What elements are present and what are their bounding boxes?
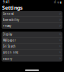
staticText: Wallpaper [3, 39, 16, 42]
staticText: > [59, 51, 61, 54]
staticText: > [59, 57, 61, 60]
button[interactable]: Wallpaper [2, 38, 62, 44]
button[interactable]: Screen Time [2, 50, 62, 56]
staticText: ıl ᯤ ▮ [54, 0, 61, 4]
staticText: > [59, 12, 61, 16]
staticText: > [59, 33, 61, 36]
staticText: Accessibility [3, 18, 19, 22]
staticText: > [59, 39, 61, 42]
button[interactable]: Accessibility [2, 17, 62, 23]
staticText: > [59, 45, 61, 48]
staticText: > [59, 18, 61, 22]
button[interactable]: General [2, 11, 62, 17]
staticText: 9:41 [3, 0, 10, 4]
staticText: Privacy [3, 24, 11, 28]
staticText: Screen Time [3, 51, 19, 54]
staticText: General [3, 12, 14, 16]
button[interactable]: Siri Search [2, 44, 62, 50]
button[interactable]: Display [2, 32, 62, 38]
staticText: Battery [3, 57, 12, 60]
staticText: Siri Search [3, 45, 16, 48]
staticText: Display [3, 33, 12, 36]
staticText: > [59, 24, 61, 28]
button[interactable]: Battery [2, 56, 62, 62]
staticText: Settings [2, 4, 23, 11]
button[interactable]: Privacy [2, 23, 62, 29]
